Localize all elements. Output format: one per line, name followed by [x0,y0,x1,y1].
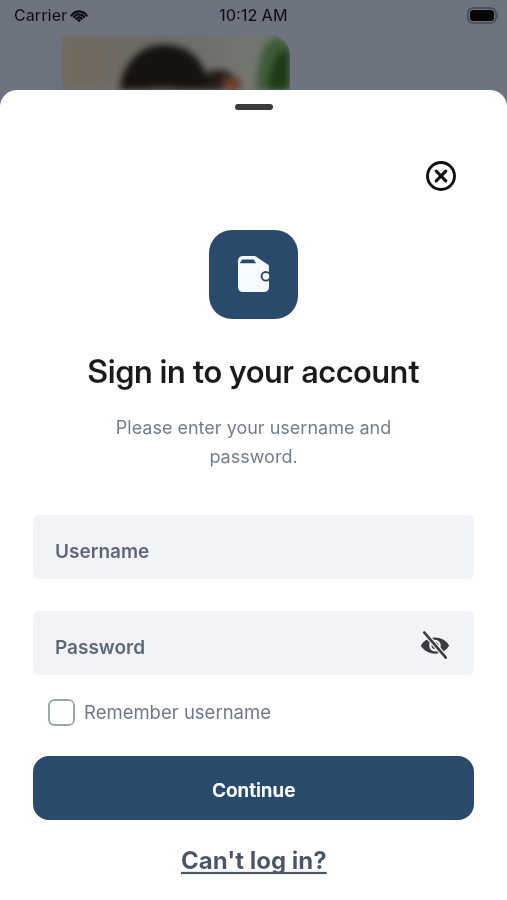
staticText: Continue [212,779,296,802]
button[interactable]: Show password [416,626,454,664]
button[interactable]: Remember username [33,694,474,731]
staticText: Sign in to your account [0,352,507,391]
staticText: Remember username [84,701,271,723]
staticText: Password [55,636,146,659]
button[interactable]: Password [33,611,474,675]
button[interactable]: Close [422,157,459,194]
button[interactable]: Continue [33,756,474,820]
staticText: Username [55,540,150,563]
staticText: Carrier [14,5,68,24]
button[interactable]: Can't log in? [171,843,337,878]
button[interactable]: Username [33,515,474,579]
staticText: Can't log in? [181,846,327,875]
staticText: 10:12 AM [219,5,288,24]
staticText: Please enter your username and password. [0,417,507,468]
